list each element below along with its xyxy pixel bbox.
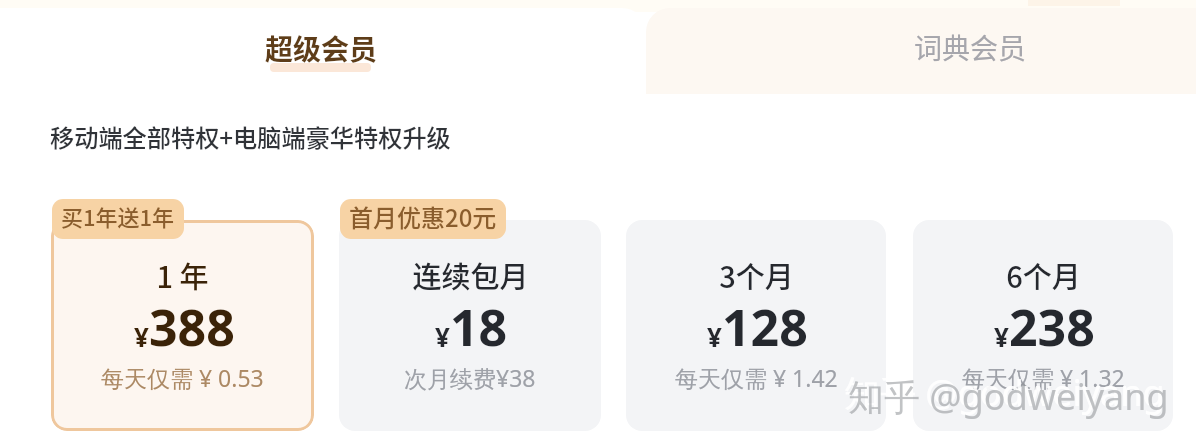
staticText: 知乎 @godweiyang [844, 368, 1165, 417]
staticText: 388 [149, 293, 235, 361]
button[interactable]: 词典会员 [646, 8, 1196, 94]
staticText: 每天仅需 ¥ 1.32 [962, 362, 1125, 393]
staticText: 超级会员 [265, 28, 378, 69]
staticText: ¥ [134, 319, 149, 354]
button[interactable]: 3个月 [626, 220, 886, 431]
button[interactable]: 6个月 [913, 220, 1173, 431]
staticText: 知乎 @godweiyang [848, 372, 1169, 421]
staticText: 6个月 [1006, 254, 1081, 296]
staticText: 词典会员 [914, 27, 1027, 68]
staticText: ¥ [435, 319, 450, 354]
staticText: 买1年送1年 [61, 200, 175, 232]
staticText: 18 [450, 293, 508, 361]
staticText: 每天仅需 ¥ 0.53 [101, 362, 264, 393]
staticText: ¥ [994, 319, 1009, 354]
staticText: 238 [1009, 293, 1095, 361]
staticText: 1 年 [156, 254, 209, 296]
button[interactable]: 1 年 [51, 220, 314, 431]
staticText: 移动端全部特权+电脑端豪华特权升级 [50, 119, 451, 154]
staticText: 每天仅需 ¥ 1.42 [675, 362, 838, 393]
staticText: 次月续费¥38 [404, 362, 536, 393]
button[interactable]: 买1年送1年 [52, 199, 184, 239]
button[interactable]: 超级会员 [0, 8, 646, 94]
staticText: 3个月 [719, 254, 794, 296]
button[interactable]: 首月优惠20元 [340, 199, 506, 239]
button[interactable]: 连续包月 [339, 220, 601, 431]
staticText: 128 [722, 293, 808, 361]
staticText: 连续包月 [412, 254, 529, 296]
staticText: ¥ [707, 319, 722, 354]
staticText: 首月优惠20元 [349, 199, 497, 234]
